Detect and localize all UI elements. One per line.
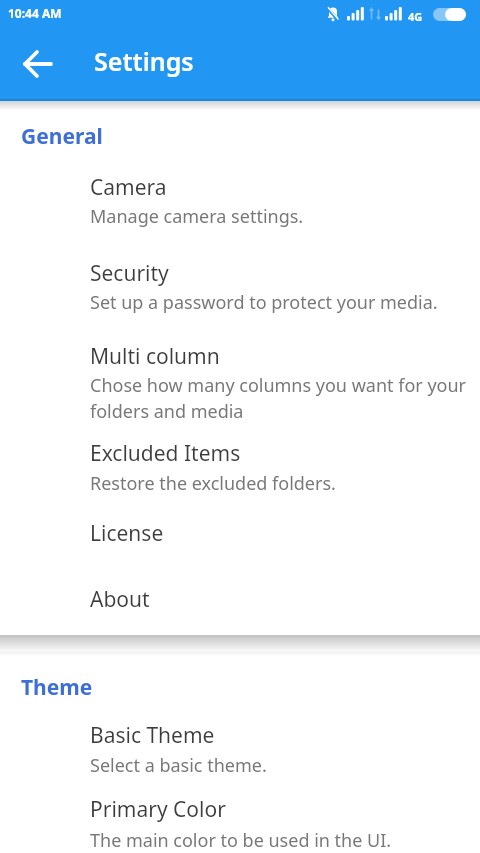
button[interactable] [16,42,60,86]
button[interactable]: Camera [0,160,480,244]
button[interactable]: License [0,506,480,566]
staticText: 4G [408,9,423,24]
staticText: Select a basic theme. [90,753,267,778]
staticText: Basic Theme [90,721,215,750]
staticText: Chose how many columns you want for your… [90,373,467,423]
button[interactable]: Primary Color [0,790,480,853]
staticText: Primary Color [90,795,226,824]
staticText: Excluded Items [90,439,241,468]
staticText: Set up a password to protect your media. [90,290,438,315]
staticText: About [90,585,150,614]
staticText: Theme [21,673,93,702]
button[interactable]: Basic Theme [0,708,480,790]
staticText: Restore the excluded folders. [90,471,336,496]
staticText: 10:44 AM [8,5,62,21]
staticText: Manage camera settings. [90,204,304,229]
button[interactable]: Security [0,244,480,330]
button[interactable]: Excluded Items [0,426,480,506]
staticText: Security [90,259,169,288]
staticText: Settings [94,44,194,78]
staticText: General [21,122,103,151]
staticText: Camera [90,173,167,202]
button[interactable]: Multi column [0,330,480,426]
staticText: Multi column [90,342,220,371]
staticText: License [90,519,164,548]
staticText: The main color to be used in the UI. [90,828,392,853]
button[interactable]: About [0,566,480,630]
